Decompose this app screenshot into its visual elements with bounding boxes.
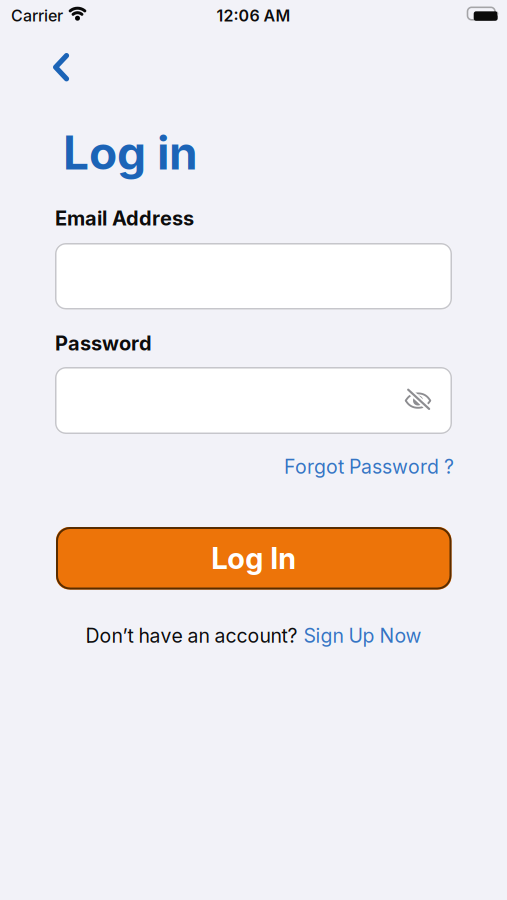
button[interactable]: Log In [56, 527, 451, 589]
button[interactable]: Back [41, 47, 81, 88]
staticText: Log In [211, 540, 296, 576]
staticText: Carrier [11, 6, 63, 25]
button[interactable]: Forgot Password ? [284, 455, 454, 479]
staticText: Password [55, 331, 152, 355]
textField[interactable]: Password [71, 385, 436, 415]
staticText: Log in [63, 125, 198, 181]
button[interactable]: Sign Up Now [303, 624, 421, 648]
staticText: 12:06 AM [216, 6, 290, 25]
button[interactable]: Show password [397, 384, 439, 416]
staticText: Forgot Password ? [284, 455, 454, 479]
staticText: Email Address [55, 206, 194, 230]
staticText: Don’t have an account? [85, 624, 297, 648]
staticText: Sign Up Now [303, 624, 421, 648]
